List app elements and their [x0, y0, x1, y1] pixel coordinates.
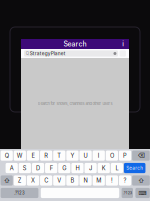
staticText: J	[89, 165, 92, 171]
staticText: L	[115, 165, 118, 171]
staticText: H	[75, 165, 79, 171]
button[interactable]: E	[27, 150, 39, 161]
button[interactable]: O	[106, 150, 118, 161]
button[interactable]: Info	[120, 39, 127, 49]
staticText: Q	[5, 152, 9, 159]
button[interactable]: U	[79, 150, 92, 161]
staticText: K	[102, 165, 106, 171]
staticText: C	[44, 177, 48, 184]
staticText: X	[31, 177, 35, 184]
button[interactable]: !	[106, 175, 118, 186]
staticText: ?	[124, 177, 127, 184]
staticText: i	[122, 40, 124, 48]
button[interactable]: M	[93, 175, 105, 186]
button[interactable]: Y	[66, 150, 78, 161]
button[interactable]: ⇧	[1, 175, 13, 186]
staticText: V	[57, 177, 61, 184]
button[interactable]: N	[79, 175, 92, 186]
button[interactable]: .?123	[1, 188, 38, 198]
button[interactable]: R	[40, 150, 52, 161]
button[interactable]: W	[14, 150, 26, 161]
staticText: Search for shows, channels and other use…	[37, 101, 112, 106]
staticText: ⌫	[137, 152, 144, 159]
button[interactable]: L	[111, 163, 123, 173]
staticText: Y	[70, 152, 74, 159]
staticText: O	[110, 152, 114, 159]
staticText: StrategyPlanet	[30, 51, 66, 56]
staticText: ⇧	[138, 177, 144, 184]
staticText: .?123	[123, 191, 132, 195]
button[interactable]: C	[40, 175, 52, 186]
staticText: S	[23, 165, 27, 171]
button[interactable]: H	[71, 163, 83, 173]
staticText: .?123	[14, 190, 25, 196]
staticText: ⌨	[139, 190, 147, 196]
staticText: U	[84, 152, 88, 159]
staticText: !	[111, 177, 113, 184]
staticText: P	[123, 152, 127, 159]
staticText: ⇧	[4, 177, 10, 184]
staticText: E	[31, 152, 34, 159]
button[interactable]: ⌫	[132, 150, 150, 161]
staticText: Search	[63, 40, 86, 48]
staticText: Q	[26, 51, 29, 56]
staticText: R	[44, 152, 48, 159]
button[interactable]: ?	[119, 175, 131, 186]
staticText: T	[57, 152, 61, 159]
staticText: W	[17, 152, 23, 159]
staticText: A	[10, 165, 14, 171]
staticText: I	[98, 152, 100, 159]
button[interactable]: J	[84, 163, 97, 173]
button[interactable]: V	[53, 175, 65, 186]
staticText: N	[84, 177, 88, 184]
button[interactable]: Z	[14, 175, 26, 186]
button[interactable]: A	[6, 163, 18, 173]
button[interactable]: B	[66, 175, 78, 186]
button[interactable]: G	[58, 163, 70, 173]
button[interactable]: Q	[1, 150, 13, 161]
button[interactable]: X	[27, 175, 39, 186]
button[interactable]: .?123	[122, 188, 133, 198]
staticText: B	[70, 177, 74, 184]
button[interactable]: ⇧	[132, 175, 150, 186]
button[interactable]: P	[119, 150, 131, 161]
button[interactable]: I	[93, 150, 105, 161]
button[interactable]: D	[32, 163, 44, 173]
staticText: G	[62, 165, 66, 171]
staticText: M	[96, 177, 101, 184]
button[interactable]: Search	[124, 163, 145, 173]
button[interactable]: S	[19, 163, 31, 173]
staticText: Search	[126, 165, 143, 171]
staticText: Z	[18, 177, 22, 184]
button[interactable]: F	[45, 163, 57, 173]
button[interactable]: K	[98, 163, 110, 173]
staticText: F	[50, 165, 53, 171]
button[interactable]: ⌨	[135, 188, 150, 198]
staticText: D	[36, 165, 40, 171]
button[interactable]: T	[53, 150, 65, 161]
